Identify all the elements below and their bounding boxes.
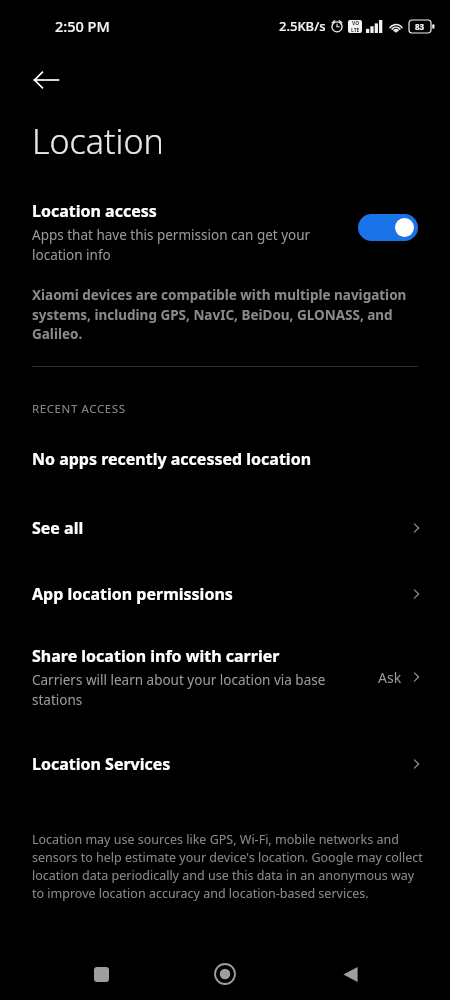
staticText: Ask xyxy=(378,668,402,687)
staticText: App location permissions xyxy=(32,583,408,605)
button[interactable]: Recent apps xyxy=(77,950,125,998)
staticText: Xiaomi devices are compatible with multi… xyxy=(32,286,424,343)
button[interactable]: Back xyxy=(326,950,374,998)
button[interactable]: Share location info with carrier xyxy=(0,645,450,709)
staticText: Location Services xyxy=(32,753,408,775)
button[interactable]: See all xyxy=(0,517,450,539)
staticText: RECENT ACCESS xyxy=(32,401,126,417)
button[interactable]: App location permissions xyxy=(0,583,450,605)
staticText: 2:50 PM xyxy=(55,16,110,36)
staticText: LTE xyxy=(351,27,360,33)
button[interactable]: Home xyxy=(201,950,249,998)
button[interactable]: Location access toggle xyxy=(358,214,418,241)
button[interactable]: Back xyxy=(24,58,68,102)
staticText: See all xyxy=(32,517,408,539)
staticText: 83 xyxy=(415,21,425,32)
staticText: Share location info with carrier xyxy=(32,645,280,667)
button[interactable]: No apps recently accessed location xyxy=(0,448,450,470)
staticText: Location xyxy=(32,118,164,164)
staticText: Location may use sources like GPS, Wi-Fi… xyxy=(32,831,424,901)
button[interactable]: Location Services xyxy=(0,753,450,775)
button[interactable]: Location access xyxy=(0,198,450,268)
staticText: Carriers will learn about your location … xyxy=(32,671,372,709)
staticText: Apps that have this permission can get y… xyxy=(32,226,346,264)
staticText: VO xyxy=(352,20,360,27)
staticText: 2.5KB/s xyxy=(279,17,326,35)
staticText: Location access xyxy=(32,200,157,222)
